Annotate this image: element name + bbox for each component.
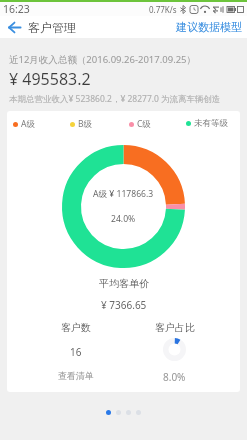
staticText: ¥ 495583.2 [9, 68, 91, 90]
staticText: ¥ 7366.65 [101, 298, 147, 312]
staticText: 查看清单 [58, 370, 94, 381]
button[interactable]: 查看清单 [26, 370, 125, 381]
staticText: 24.0% [111, 213, 136, 225]
staticText: A级 ¥ 117866.3 [93, 188, 154, 200]
staticText: C级 [137, 118, 151, 130]
staticText: 客户数 [61, 321, 91, 334]
staticText: 平均客单价 [99, 277, 149, 290]
staticText: 客户占比 [155, 321, 195, 334]
staticText: 近12月收入总额（2016.09.26-2017.09.25） [9, 53, 197, 66]
button[interactable]: 建议数据模型 [168, 16, 247, 38]
staticText: 16 [70, 345, 82, 359]
staticText: 客户管理 [28, 20, 76, 35]
staticText: 本期总营业收入¥ 523860.2，¥ 28277.0 为流离车辆创造 [9, 93, 221, 105]
button[interactable]: Back [0, 16, 28, 38]
staticText: A级 [21, 118, 35, 130]
staticText: B级 [78, 118, 93, 130]
staticText: 16:23 [3, 2, 30, 16]
staticText: 建议数据模型 [176, 20, 242, 34]
staticText: 0.77K/s [149, 4, 177, 15]
staticText: 8.0% [163, 370, 186, 384]
staticText: 未有等级 [194, 118, 228, 129]
